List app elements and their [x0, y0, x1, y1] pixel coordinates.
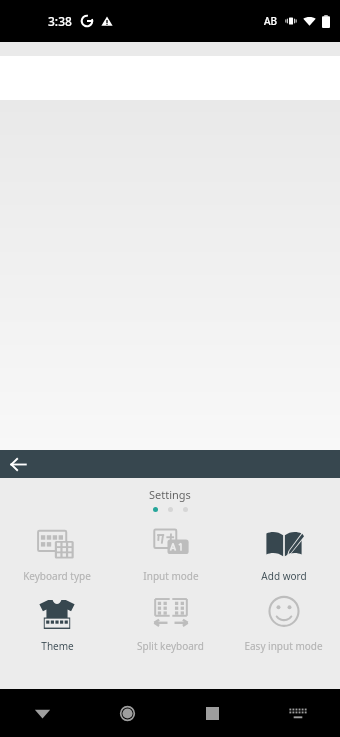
button[interactable]: Hide keyboard: [0, 689, 85, 737]
staticText: Keyboard type: [23, 569, 91, 583]
button[interactable]: Home: [85, 689, 170, 737]
staticText: Add word: [261, 569, 307, 583]
button[interactable]: Easy input mode: [227, 590, 340, 655]
staticText: Easy input mode: [244, 639, 323, 653]
button[interactable]: Recents: [170, 689, 255, 737]
button[interactable]: Switch keyboard: [255, 689, 340, 737]
button[interactable]: Theme: [0, 590, 114, 655]
staticText: 3:38: [48, 13, 72, 29]
button[interactable]: Add word: [227, 520, 340, 585]
staticText: AB: [264, 14, 278, 28]
staticText: Settings: [149, 487, 191, 502]
button[interactable]: Back: [4, 450, 32, 478]
button[interactable]: Input mode: [114, 520, 227, 585]
button[interactable]: Keyboard type: [0, 520, 114, 585]
staticText: Input mode: [143, 569, 199, 583]
button[interactable]: Split keyboard: [114, 590, 227, 655]
staticText: Split keyboard: [137, 639, 204, 653]
staticText: Theme: [41, 639, 74, 653]
